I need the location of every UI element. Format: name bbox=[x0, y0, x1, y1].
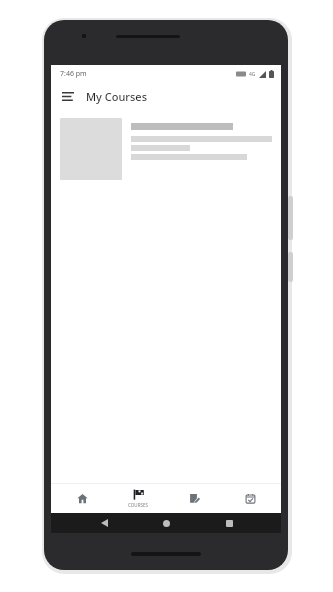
staticText: 4G bbox=[249, 71, 256, 78]
button[interactable]: Home bbox=[57, 483, 107, 513]
button[interactable]: Assignments bbox=[169, 483, 219, 513]
button[interactable]: Home bbox=[156, 513, 176, 533]
button[interactable]: Courses bbox=[113, 483, 163, 513]
button[interactable] bbox=[51, 110, 281, 483]
staticText: COURSES bbox=[128, 502, 148, 508]
button[interactable]: Open navigation menu bbox=[57, 85, 79, 107]
button[interactable]: Recent apps bbox=[219, 513, 239, 533]
staticText: 7:46 pm bbox=[60, 69, 87, 79]
staticText: My Courses bbox=[86, 89, 148, 104]
button[interactable]: Calendar bbox=[225, 483, 275, 513]
button[interactable]: Back bbox=[94, 513, 114, 533]
